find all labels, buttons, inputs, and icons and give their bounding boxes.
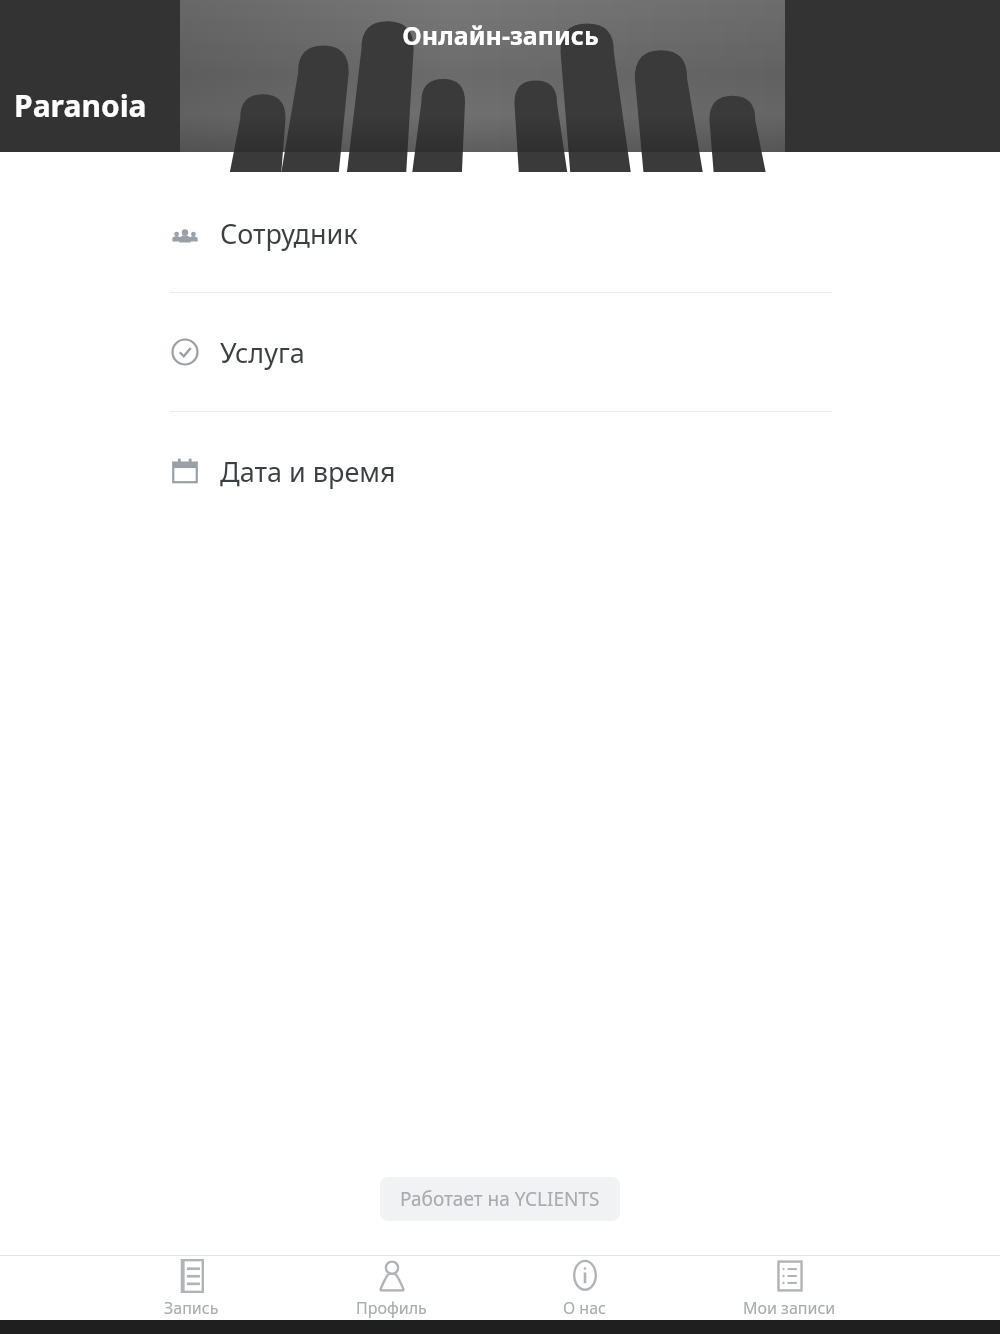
button[interactable]: Сотрудник [0, 174, 1000, 292]
staticText: Paranoia [14, 85, 147, 126]
staticText: Онлайн-запись [402, 18, 599, 52]
button[interactable]: Запись [150, 1258, 233, 1319]
button[interactable]: Дата и время [0, 412, 1000, 530]
other: Запись [174, 1258, 210, 1294]
staticText: Сотрудник [220, 215, 358, 252]
other: Профиль [374, 1258, 410, 1294]
button[interactable]: Работает на YCLIENTS [380, 1177, 620, 1221]
staticText: Запись [164, 1297, 219, 1319]
button[interactable]: О нас [549, 1258, 620, 1319]
staticText: Профиль [356, 1297, 427, 1319]
button[interactable]: Мои записи [729, 1258, 850, 1319]
staticText: Дата и время [220, 453, 396, 490]
staticText: Работает на YCLIENTS [400, 1186, 600, 1212]
other: Мои записи [772, 1258, 808, 1294]
staticText: Услуга [220, 334, 305, 371]
button[interactable]: Услуга [0, 293, 1000, 411]
staticText: О нас [563, 1297, 606, 1319]
other: О нас [567, 1258, 603, 1294]
staticText: Мои записи [743, 1297, 836, 1319]
button[interactable]: Профиль [342, 1258, 441, 1319]
